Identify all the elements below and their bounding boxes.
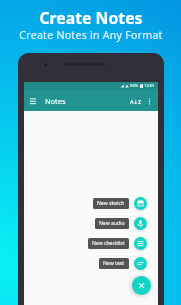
button[interactable]: New text — [134, 257, 147, 270]
button[interactable]: Sort — [129, 94, 143, 108]
staticText: A↓Z — [130, 98, 142, 105]
staticText: New sketch — [97, 200, 125, 207]
button[interactable]: New text — [99, 258, 129, 269]
button[interactable]: New checklist — [134, 237, 147, 250]
button[interactable]: Open navigation menu — [27, 95, 39, 107]
staticText: Create Notes in Any Format — [19, 28, 163, 42]
staticText: New checklist — [92, 240, 125, 247]
button[interactable]: New checklist — [88, 238, 129, 249]
staticText: 12:01 — [144, 83, 155, 89]
staticText: New audio — [99, 220, 125, 227]
staticText: New text — [103, 260, 125, 267]
staticText: Create Notes — [39, 7, 143, 29]
staticText: Notes — [45, 96, 66, 106]
button[interactable]: New sketch — [134, 197, 147, 210]
staticText: 92% — [130, 83, 139, 89]
button[interactable]: New audio — [95, 218, 129, 229]
button[interactable]: New audio — [134, 217, 147, 230]
button[interactable]: More options — [143, 95, 156, 108]
button[interactable]: New sketch — [93, 198, 129, 209]
button[interactable]: Close menu — [132, 276, 151, 295]
